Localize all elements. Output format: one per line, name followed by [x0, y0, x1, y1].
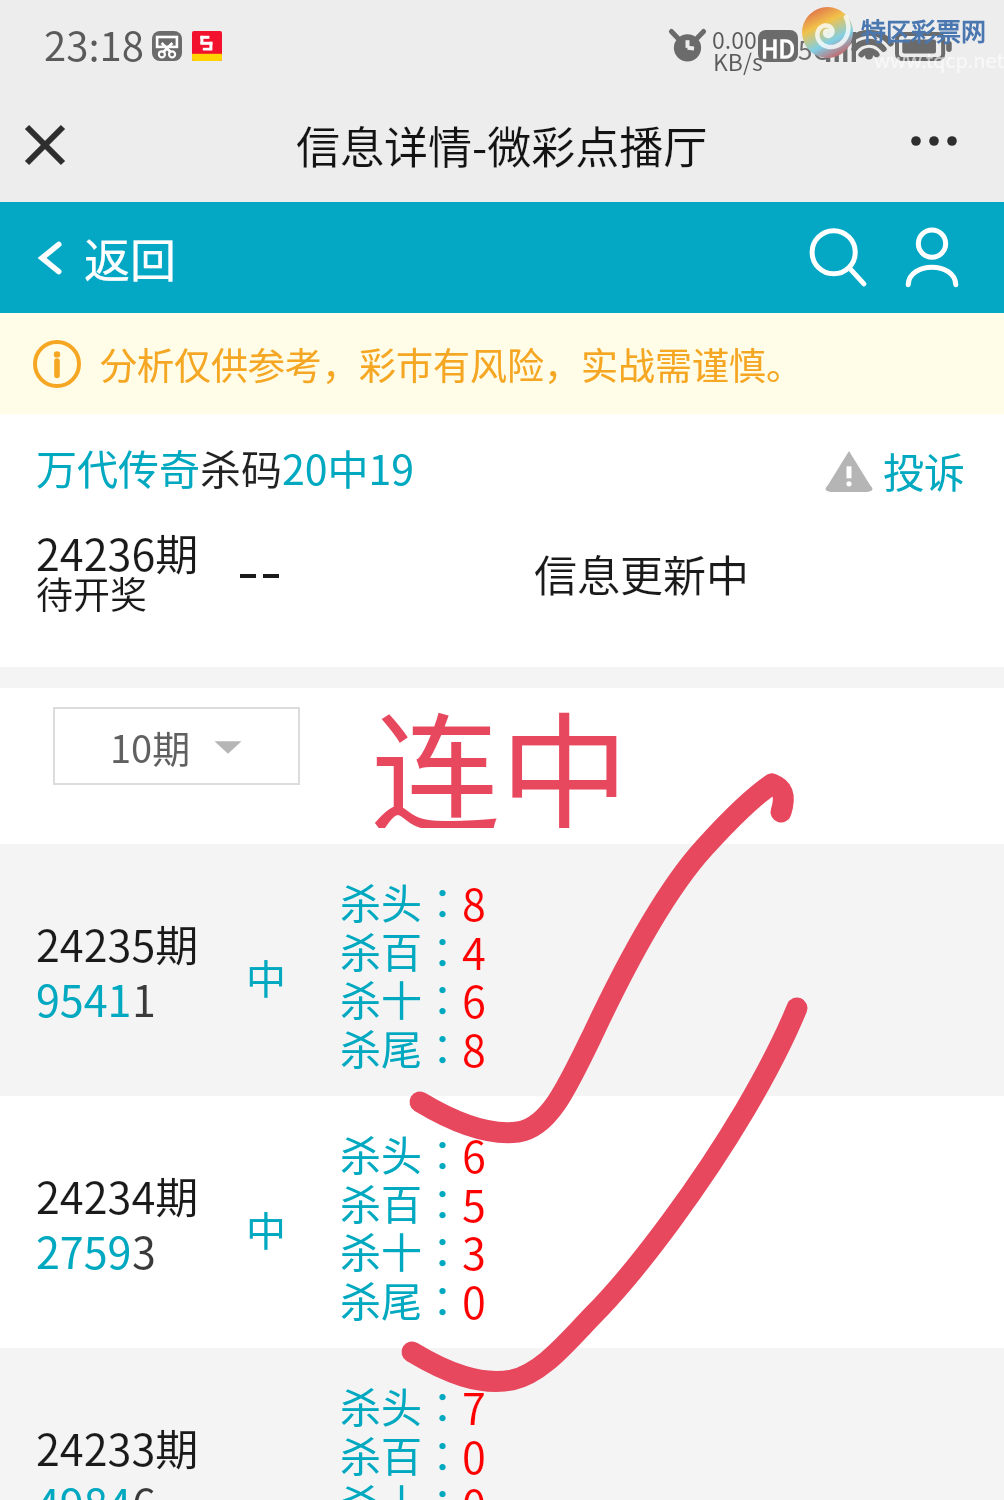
staticText: 8: [462, 871, 486, 933]
staticText: 杀十：: [340, 1220, 463, 1279]
staticText: 杀百：: [340, 1424, 463, 1483]
button[interactable]: 24235期: [0, 844, 1004, 1096]
staticText: 5G: [798, 30, 831, 68]
staticText: 6: [132, 1471, 156, 1500]
staticText: 24233期: [36, 1416, 199, 1478]
staticText: 1: [132, 967, 156, 1029]
button[interactable]: 投诉: [820, 440, 965, 499]
staticText: 投诉: [883, 440, 965, 499]
button[interactable]: Search: [802, 222, 874, 294]
staticText: 杀十：: [340, 1472, 463, 1500]
staticText: 4: [462, 920, 486, 982]
staticText: 24234期: [36, 1164, 199, 1226]
staticText: 6: [462, 968, 486, 1030]
staticText: 分析仅供参考，彩市有风险，实战需谨慎。: [100, 337, 803, 391]
button[interactable]: 返回: [30, 224, 176, 291]
staticText: 5: [462, 1172, 486, 1234]
staticText: 20中19: [282, 437, 415, 496]
staticText: 杀码: [200, 437, 282, 496]
staticText: 24236期: [36, 521, 199, 583]
staticText: 0.00: [712, 22, 757, 55]
staticText: 中: [246, 1200, 286, 1258]
staticText: 信息详情-微彩点播厅: [296, 113, 708, 177]
button[interactable]: Profile: [896, 222, 968, 294]
staticText: 杀尾：: [340, 1269, 463, 1328]
staticText: 特区彩票网: [861, 12, 987, 48]
staticText: 待开奖: [36, 566, 147, 620]
staticText: 杀百：: [340, 920, 463, 979]
staticText: 万代传奇: [36, 437, 200, 496]
staticText: 7: [462, 1375, 486, 1437]
staticText: 杀尾：: [340, 1017, 463, 1076]
staticText: 3: [132, 1219, 156, 1281]
staticText: 0: [462, 1472, 486, 1500]
staticText: 6: [462, 1123, 486, 1185]
staticText: 杀头：: [340, 1375, 463, 1434]
staticText: 2759: [36, 1219, 132, 1281]
staticText: 连中: [371, 672, 629, 828]
button[interactable]: 24234期: [0, 1096, 1004, 1348]
staticText: 0: [462, 1424, 486, 1486]
staticText: 10期: [110, 719, 191, 774]
button[interactable]: Close: [14, 114, 76, 176]
staticText: 3: [462, 1220, 486, 1282]
staticText: 0: [462, 1269, 486, 1331]
staticText: KB/s: [713, 44, 763, 77]
staticText: 23:18: [44, 15, 144, 73]
button[interactable]: 10期: [53, 707, 300, 785]
staticText: 8: [462, 1017, 486, 1079]
staticText: 杀百：: [340, 1172, 463, 1231]
staticText: 返回: [84, 224, 176, 291]
staticText: HD: [761, 30, 795, 62]
staticText: www.tqcp.net: [874, 45, 1004, 74]
staticText: 杀十：: [340, 968, 463, 1027]
button[interactable]: More options: [890, 117, 980, 167]
staticText: 杀头：: [340, 1123, 463, 1182]
staticText: 中: [246, 948, 286, 1006]
staticText: 4984: [36, 1471, 132, 1500]
staticText: 杀头：: [340, 871, 463, 930]
staticText: 24235期: [36, 912, 199, 974]
staticText: 信息更新中: [534, 542, 749, 604]
staticText: 9541: [36, 967, 132, 1029]
button[interactable]: 24233期: [0, 1348, 1004, 1500]
